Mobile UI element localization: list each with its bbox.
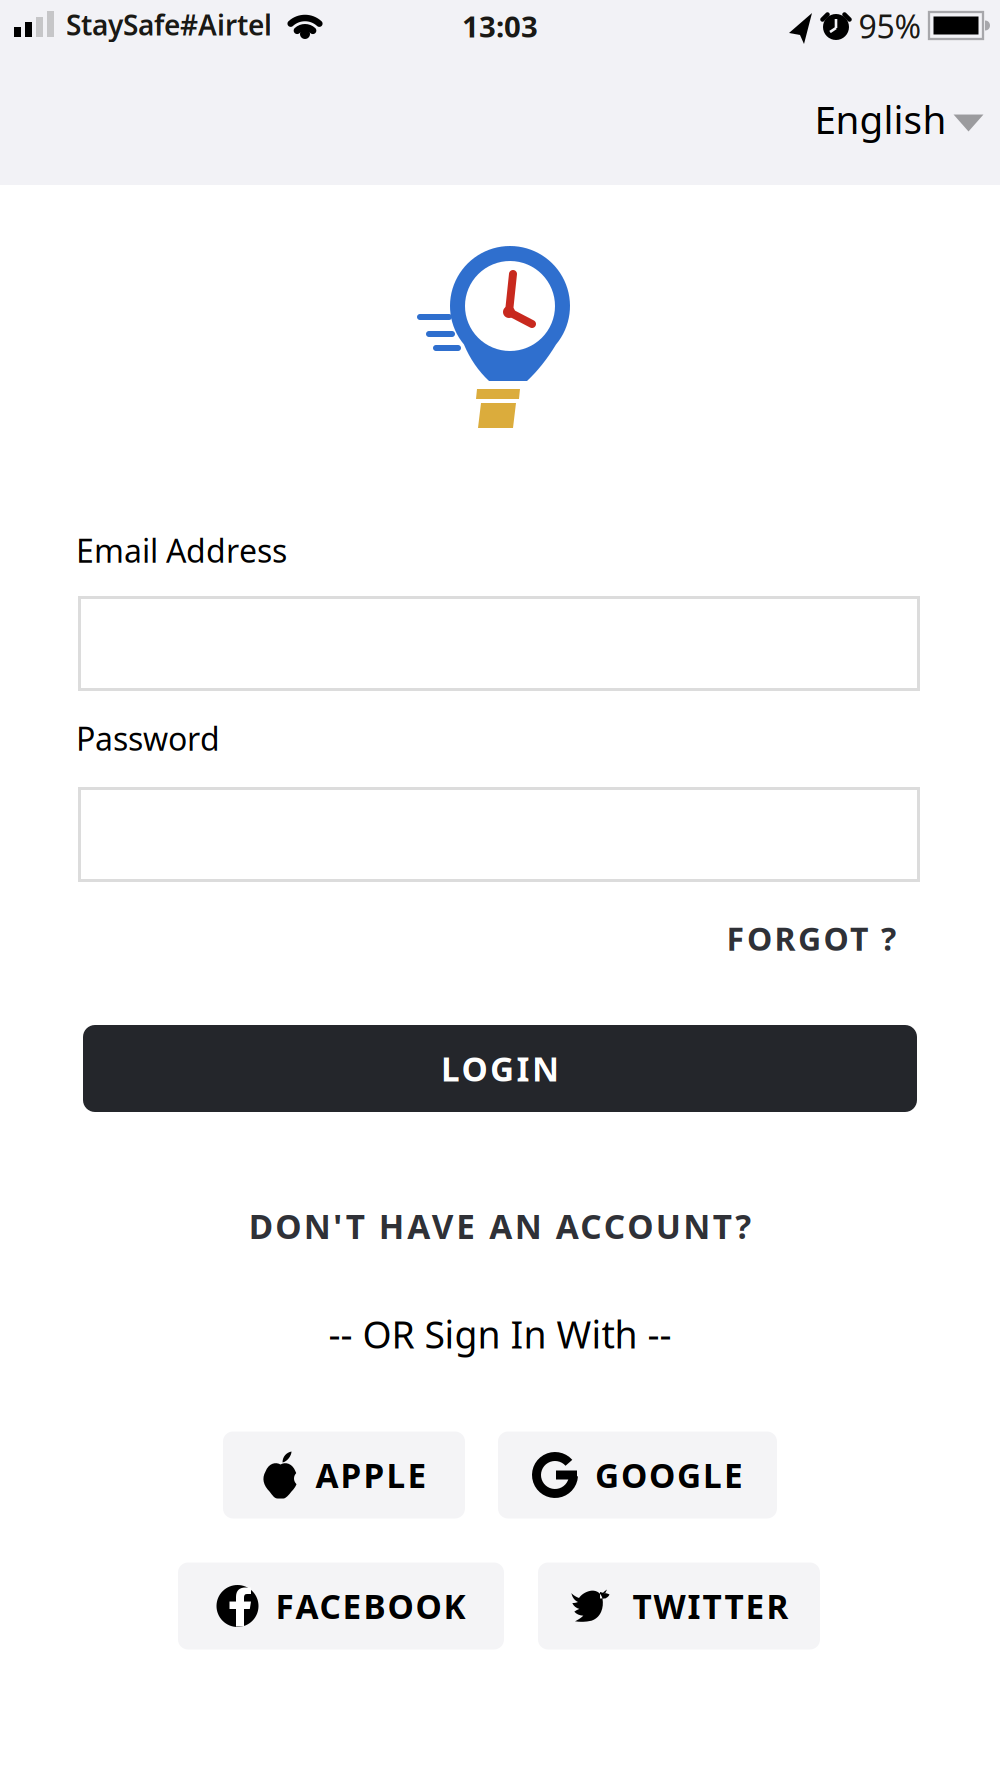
button[interactable]: FORGOT ? bbox=[726, 917, 896, 959]
staticText: FACEBOOK bbox=[275, 1584, 465, 1628]
button[interactable]: TWITTER bbox=[538, 1562, 820, 1649]
button[interactable]: English bbox=[814, 93, 983, 145]
staticText: 13:03 bbox=[462, 6, 538, 45]
staticText: English bbox=[814, 93, 946, 145]
staticText: GOOGLE bbox=[595, 1453, 743, 1497]
button[interactable]: FACEBOOK bbox=[178, 1562, 504, 1649]
staticText: -- OR Sign In With -- bbox=[328, 1309, 671, 1359]
staticText: APPLE bbox=[315, 1453, 426, 1497]
staticText: Password bbox=[76, 717, 220, 759]
staticText: StaySafe#Airtel bbox=[66, 6, 272, 43]
staticText: Email Address bbox=[76, 529, 287, 571]
button[interactable]: APPLE bbox=[223, 1431, 465, 1518]
staticText: 95% bbox=[858, 5, 921, 47]
staticText: FORGOT ? bbox=[726, 917, 896, 959]
button[interactable]: LOGIN bbox=[83, 1025, 917, 1112]
staticText: TWITTER bbox=[632, 1584, 788, 1628]
button[interactable]: DON'T HAVE AN ACCOUNT? bbox=[249, 1204, 751, 1248]
button[interactable]: GOOGLE bbox=[498, 1431, 777, 1518]
staticText: LOGIN bbox=[441, 1046, 559, 1091]
staticText: DON'T HAVE AN ACCOUNT? bbox=[249, 1204, 751, 1248]
